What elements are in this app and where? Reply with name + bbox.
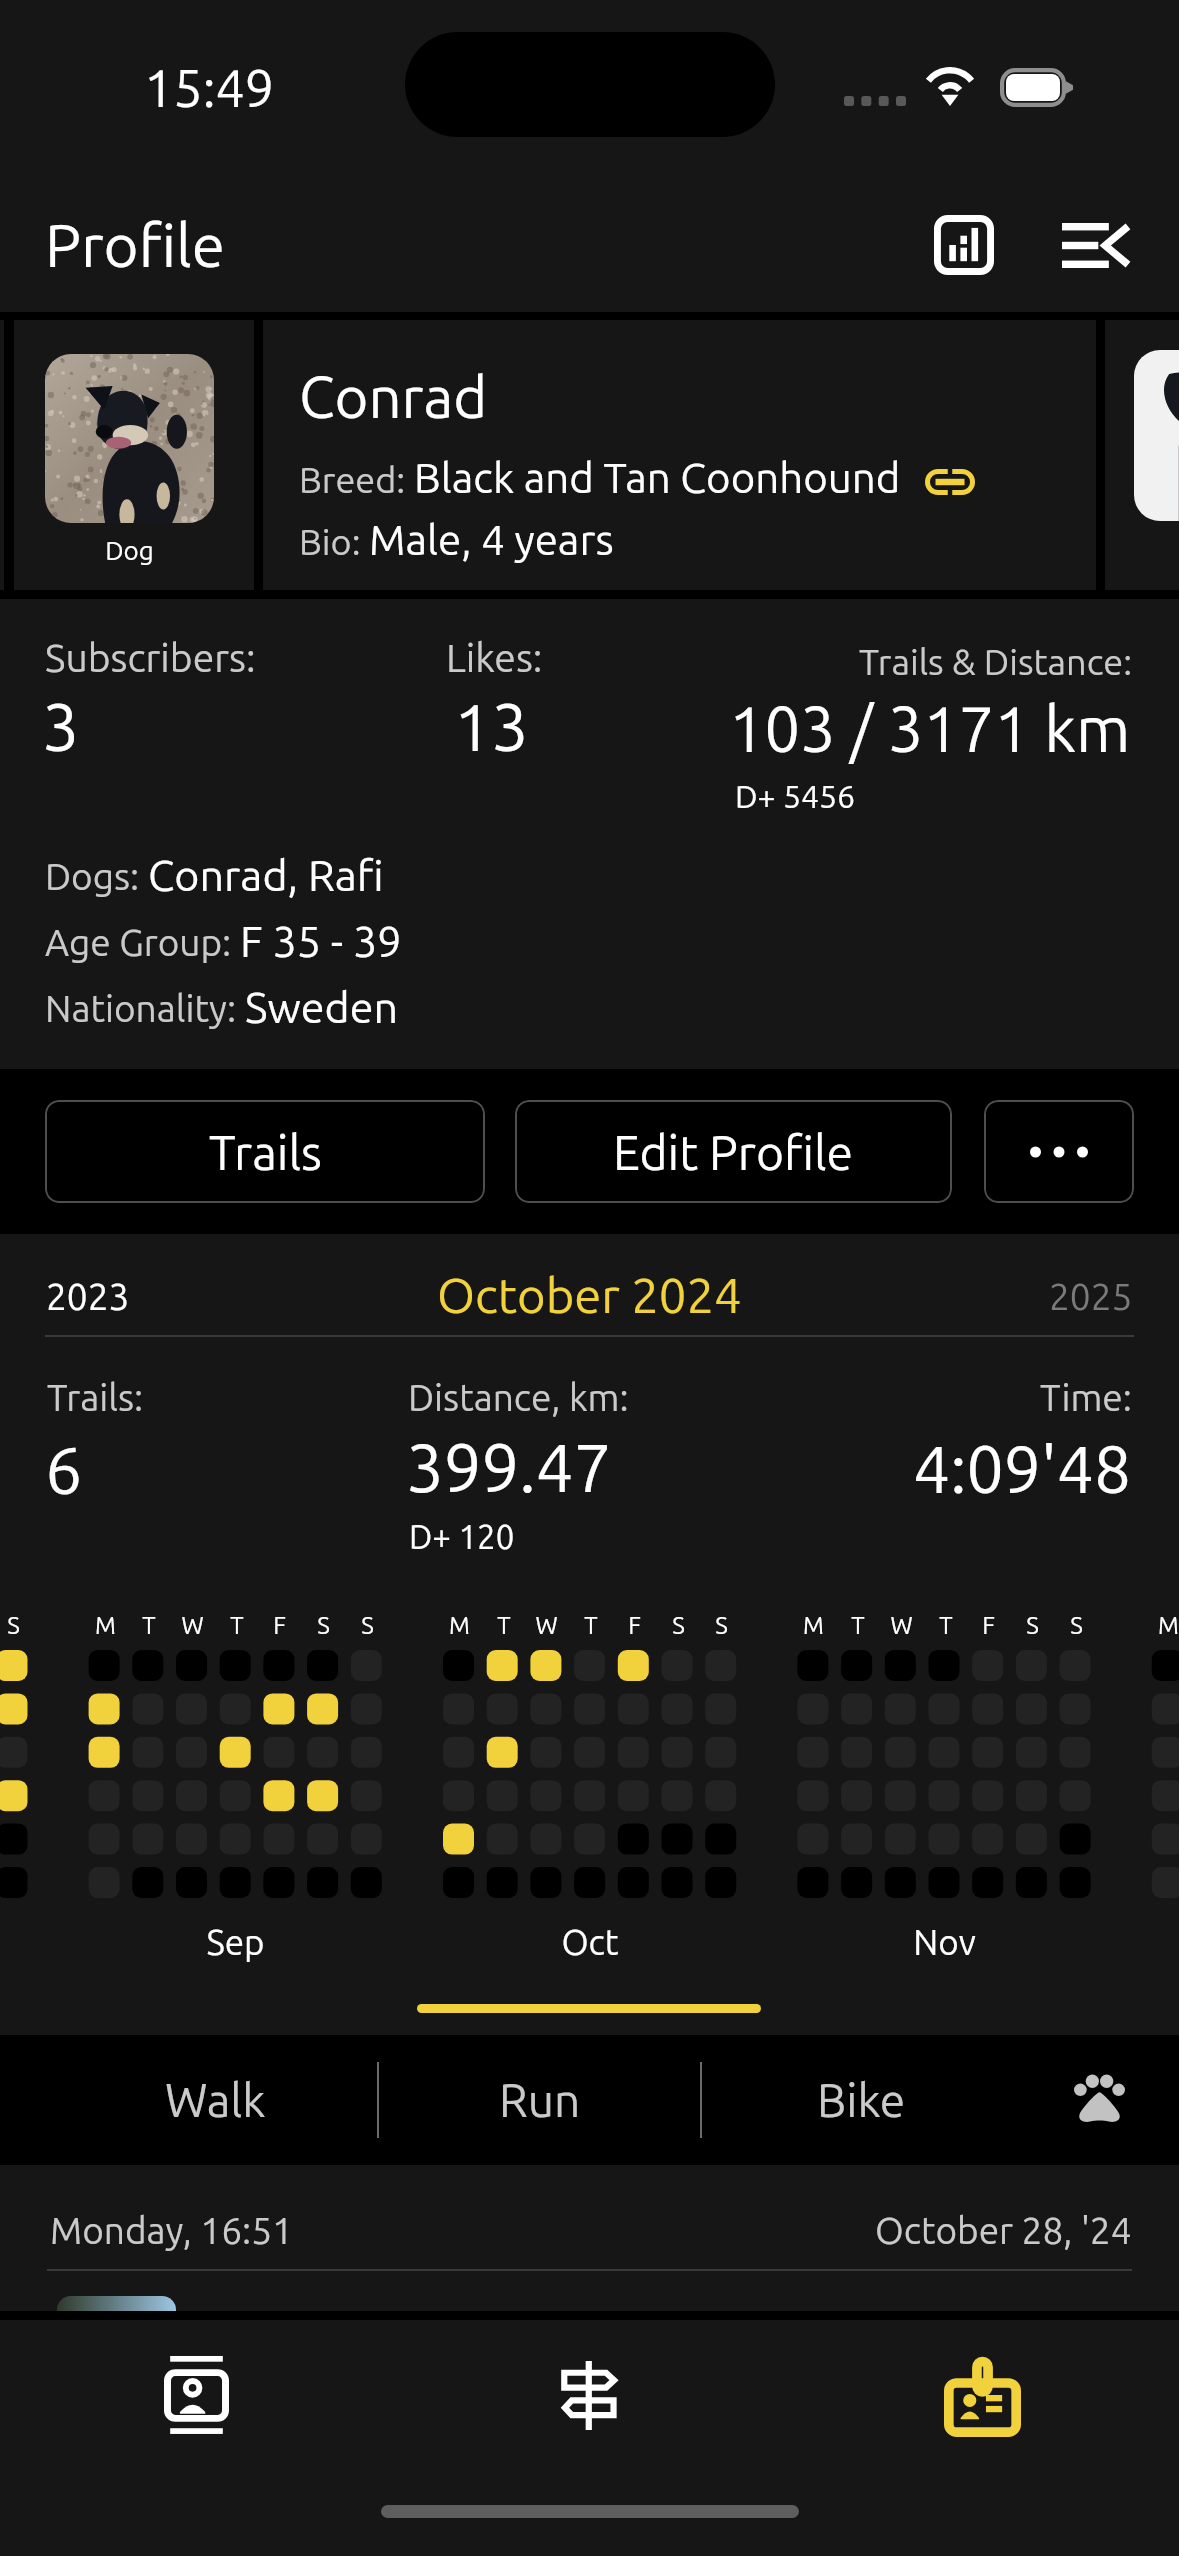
staticText: Bio: — [299, 521, 369, 561]
button[interactable]: Menu — [1029, 185, 1161, 305]
staticText: M — [95, 1612, 116, 1639]
staticText: T — [230, 1612, 244, 1639]
staticText: 13 — [454, 689, 529, 763]
staticText: Bike — [817, 2074, 906, 2126]
staticText: Conrad, Rafi — [148, 851, 384, 899]
staticText: Age Group: — [45, 922, 240, 963]
staticText: 15:49 — [144, 59, 275, 117]
staticText: T — [584, 1612, 598, 1639]
staticText: Dog — [105, 536, 154, 565]
staticText: Subscribers: — [45, 636, 256, 680]
staticText: Edit Profile — [613, 1125, 854, 1179]
staticText: Trails — [209, 1125, 322, 1179]
button[interactable]: Bike — [702, 2035, 1020, 2165]
button[interactable]: 2025 — [1049, 1276, 1133, 1317]
staticText: S — [361, 1612, 374, 1639]
button[interactable]: Badge — [884, 2320, 1080, 2470]
button[interactable]: Edit Profile — [515, 1100, 952, 1203]
staticText: Monday, 16:51 — [50, 2210, 293, 2251]
button[interactable]: Walk — [53, 2035, 377, 2165]
staticText: Trails & Distance: — [859, 641, 1133, 681]
staticText: T — [939, 1612, 953, 1639]
button[interactable]: More options — [984, 1100, 1134, 1203]
staticText: Run — [499, 2074, 581, 2126]
staticText: Breed: — [299, 459, 414, 499]
staticText: D+ 120 — [409, 1518, 515, 1555]
staticText: S — [672, 1612, 685, 1639]
staticText: Time: — [1040, 1377, 1132, 1418]
staticText: 4:09'48 — [913, 1431, 1132, 1505]
staticText: 6 — [45, 1432, 83, 1506]
staticText: Male, 4 years — [369, 516, 614, 563]
staticText: T — [142, 1612, 156, 1639]
button[interactable]: 2023 — [46, 1276, 130, 1317]
button[interactable]: Conrad — [263, 320, 1096, 590]
staticText: S — [317, 1612, 330, 1639]
staticText: S — [715, 1612, 728, 1639]
staticText: October 28, '24 — [875, 2210, 1132, 2251]
staticText: S — [1026, 1612, 1039, 1639]
staticText: Sweden — [245, 983, 398, 1031]
staticText: F — [628, 1612, 641, 1639]
staticText: Walk — [165, 2074, 266, 2126]
staticText: M — [1158, 1612, 1179, 1639]
staticText: Sep — [206, 1922, 265, 1961]
staticText: T — [851, 1612, 865, 1639]
staticText: F 35 - 39 — [240, 917, 402, 965]
staticText: Oct — [561, 1922, 619, 1961]
staticText: Trails: — [47, 1377, 144, 1418]
button[interactable]: S — [0, 1590, 1179, 2035]
button[interactable]: Statistics — [904, 185, 1024, 305]
staticText: 103 / 3171 km — [729, 693, 1131, 764]
staticText: T — [497, 1612, 511, 1639]
button[interactable]: Dog — [14, 320, 254, 590]
staticText: 3 — [42, 689, 80, 763]
staticText: Profile — [45, 211, 225, 278]
staticText: Distance, km: — [408, 1377, 629, 1418]
staticText: Nov — [913, 1922, 976, 1961]
staticText: F — [273, 1612, 286, 1639]
button[interactable]: Trails — [491, 2320, 687, 2470]
staticText: S — [7, 1612, 20, 1639]
staticText: Dogs: — [45, 856, 148, 897]
staticText: W — [535, 1612, 558, 1639]
staticText: Conrad — [299, 364, 488, 429]
staticText: W — [890, 1612, 913, 1639]
staticText: 399.47 — [406, 1430, 612, 1505]
button[interactable]: Trails — [45, 1100, 485, 1203]
staticText: S — [1070, 1612, 1083, 1639]
staticText: Nationality: — [45, 988, 245, 1029]
button[interactable]: October 2024 — [437, 1267, 742, 1322]
staticText: F — [982, 1612, 995, 1639]
staticText: Likes: — [446, 636, 543, 680]
staticText: Black and Tan Coonhound — [414, 454, 901, 501]
staticText: D+ 5456 — [735, 778, 856, 814]
button[interactable]: Run — [379, 2035, 700, 2165]
staticText: W — [181, 1612, 204, 1639]
button[interactable]: Dog activities — [1020, 2035, 1179, 2165]
staticText: M — [449, 1612, 470, 1639]
staticText: M — [803, 1612, 824, 1639]
button[interactable]: Profile — [98, 2320, 294, 2470]
